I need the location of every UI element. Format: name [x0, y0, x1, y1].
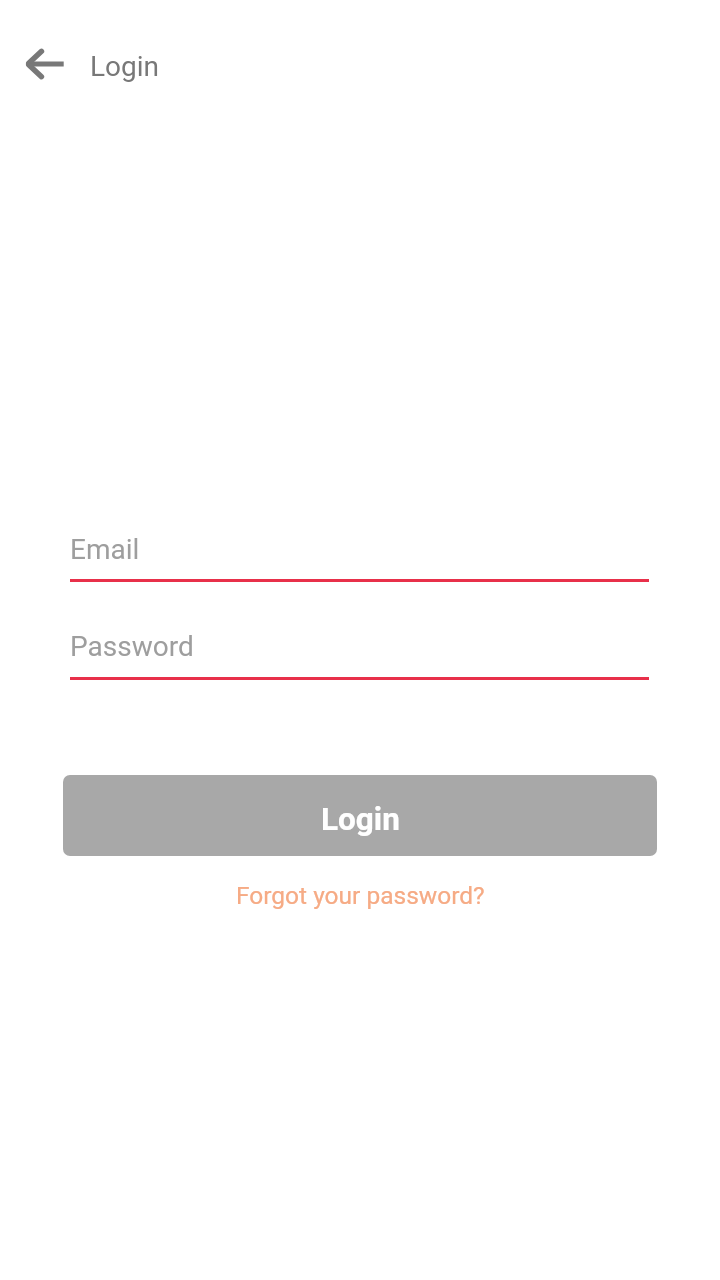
staticText: Login	[90, 50, 160, 83]
button[interactable]	[16, 36, 74, 94]
button[interactable]: Email	[70, 519, 649, 579]
staticText: Login	[321, 801, 400, 838]
staticText: Forgot your password?	[236, 881, 485, 910]
button[interactable]: Forgot your password?	[226, 875, 495, 916]
staticText: Email	[70, 533, 140, 566]
button[interactable]: Password	[70, 616, 649, 676]
button[interactable]: Login	[63, 775, 657, 856]
staticText: Password	[70, 630, 194, 663]
